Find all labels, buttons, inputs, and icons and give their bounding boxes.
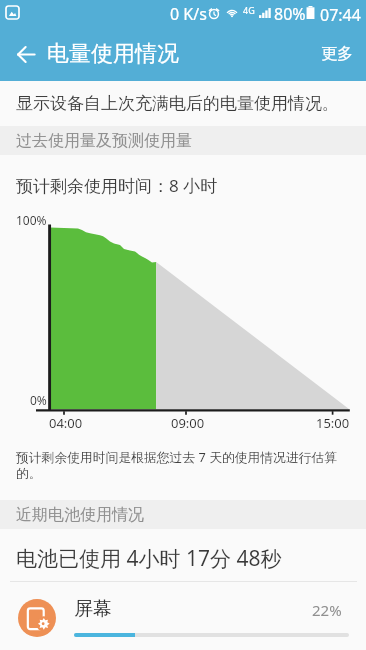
staticText: 电池已使用 4小时 17分 48秒 (16, 544, 282, 573)
staticText: 0% (30, 392, 47, 408)
button[interactable]: 更多 (309, 32, 366, 76)
staticText: 过去使用量及预测使用量 (16, 131, 192, 151)
staticText: 80% (274, 3, 306, 25)
staticText: 预计剩余使用时间是根据您过去 7 天的使用情况进行估算 的。 (16, 448, 338, 482)
staticText: 04:00 (49, 414, 83, 432)
button[interactable]: 屏幕 (0, 583, 366, 650)
staticText: 15:00 (316, 414, 350, 432)
staticText: 屏幕 (74, 597, 112, 621)
staticText: 电量使用情况 (47, 40, 179, 68)
staticText: 更多 (321, 44, 353, 64)
button[interactable]: Back (10, 38, 42, 70)
staticText: 09:00 (171, 414, 205, 432)
staticText: 22% (312, 600, 342, 620)
staticText: 近期电池使用情况 (16, 505, 144, 525)
staticText: 100% (16, 212, 47, 228)
staticText: 0 K/s (170, 3, 207, 25)
staticText: 显示设备自上次充满电后的电量使用情况。 (16, 93, 339, 114)
staticText: 07:44 (320, 4, 361, 26)
staticText: 4G (243, 4, 255, 16)
staticText: 预计剩余使用时间：8 小时 (16, 174, 218, 197)
